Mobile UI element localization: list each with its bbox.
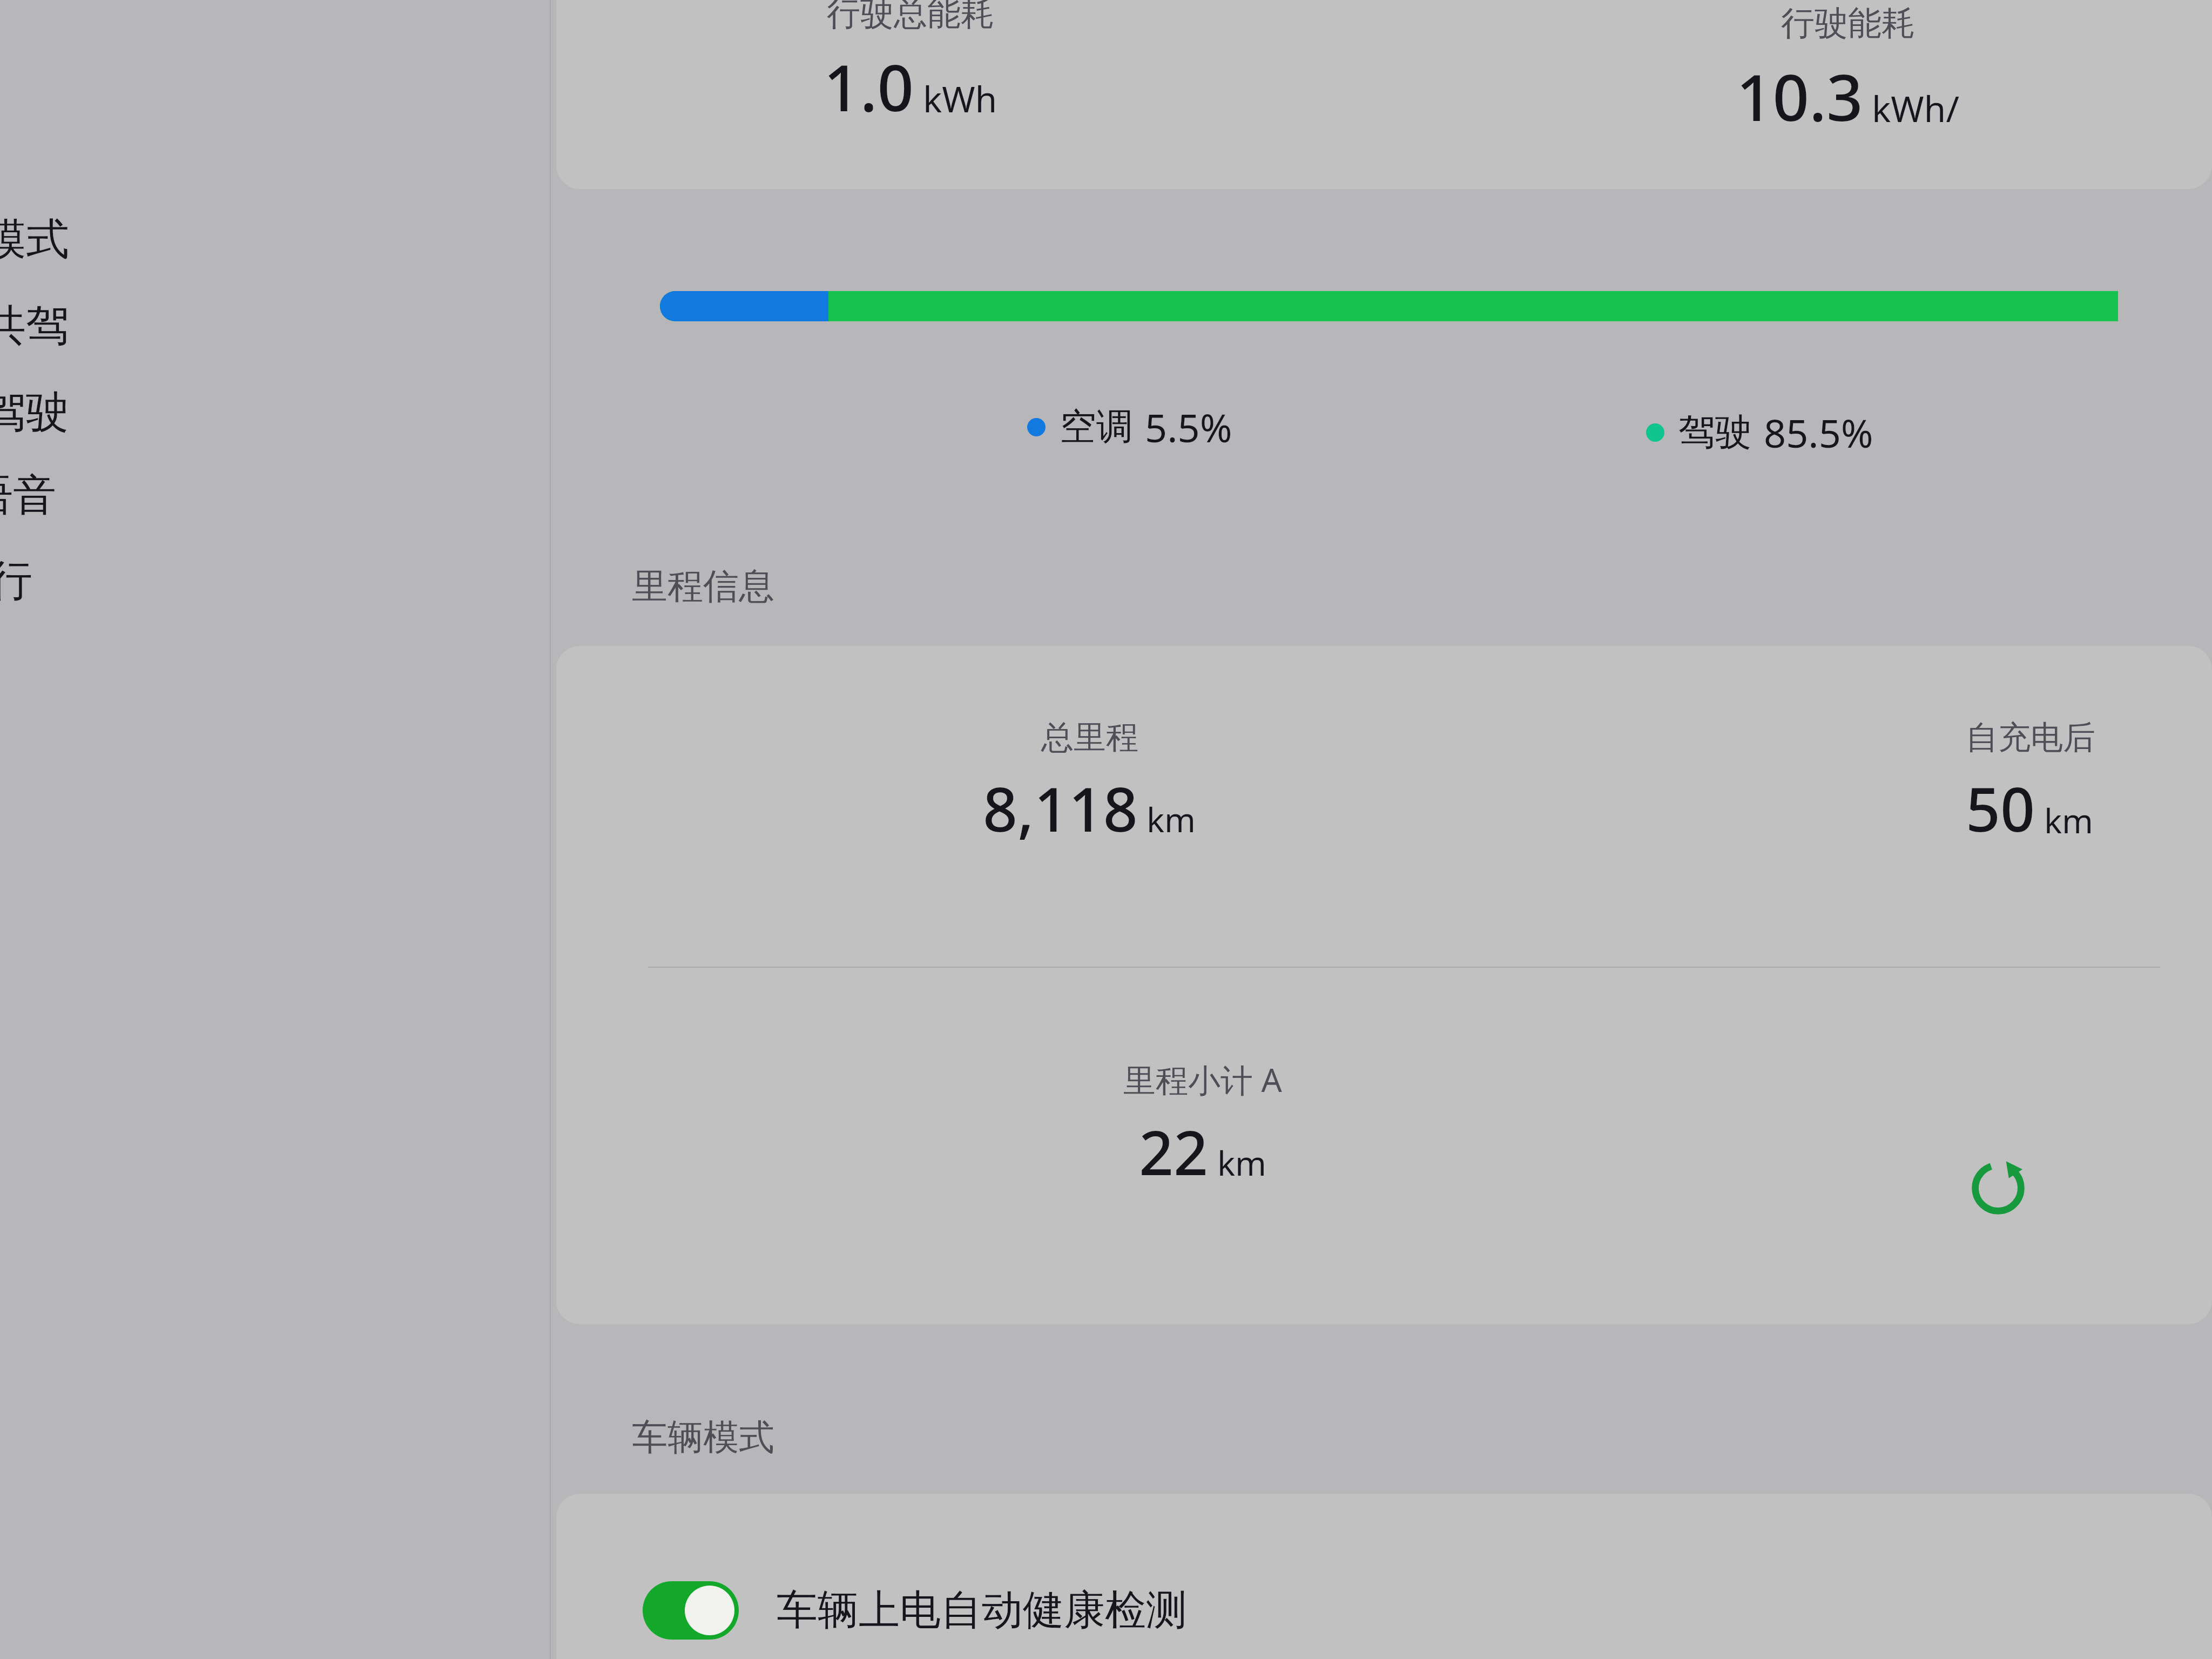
staticText: 车辆模式: [632, 1415, 774, 1460]
button[interactable]: 重置里程小计 A: [1955, 1145, 2041, 1231]
staticText: 共驾: [0, 299, 69, 353]
staticText: 8,118: [983, 767, 1138, 849]
staticText: 行驶总能耗: [827, 0, 994, 35]
staticText: km: [2044, 798, 2094, 843]
button[interactable]: 驾驶: [0, 377, 123, 447]
staticText: 10.3: [1736, 53, 1863, 140]
staticText: 50: [1966, 767, 2035, 849]
staticText: 自充电后: [1966, 717, 2095, 758]
button[interactable]: 行: [0, 545, 130, 616]
staticText: 驾驶: [1678, 409, 1752, 456]
staticText: 语音: [0, 468, 56, 523]
staticText: 行驶能耗: [1781, 2, 1915, 44]
staticText: 1.0: [824, 43, 914, 130]
staticText: km: [1147, 797, 1196, 842]
button[interactable]: 共驾: [0, 291, 123, 361]
button[interactable]: 模式: [0, 204, 123, 274]
staticText: 总里程: [1041, 717, 1138, 758]
staticText: kWh/: [1872, 84, 1959, 132]
staticText: 行: [0, 554, 32, 608]
button[interactable]: [556, 0, 2212, 189]
staticText: 里程信息: [632, 564, 774, 609]
button[interactable]: 车辆上电自动健康检测: [643, 1581, 1187, 1640]
staticText: km: [1217, 1140, 1267, 1185]
button[interactable]: 语音: [0, 460, 110, 530]
staticText: 5.5%: [1145, 401, 1232, 454]
staticText: 模式: [0, 212, 69, 267]
staticText: 里程小计 A: [1123, 1057, 1282, 1102]
button[interactable]: [556, 646, 2212, 1324]
staticText: 车辆上电自动健康检测: [777, 1584, 1187, 1636]
staticText: 驾驶: [0, 385, 69, 440]
staticText: 22: [1139, 1110, 1209, 1193]
staticText: 85.5%: [1764, 406, 1873, 459]
staticText: 空调: [1060, 404, 1133, 450]
staticText: kWh: [923, 74, 997, 123]
